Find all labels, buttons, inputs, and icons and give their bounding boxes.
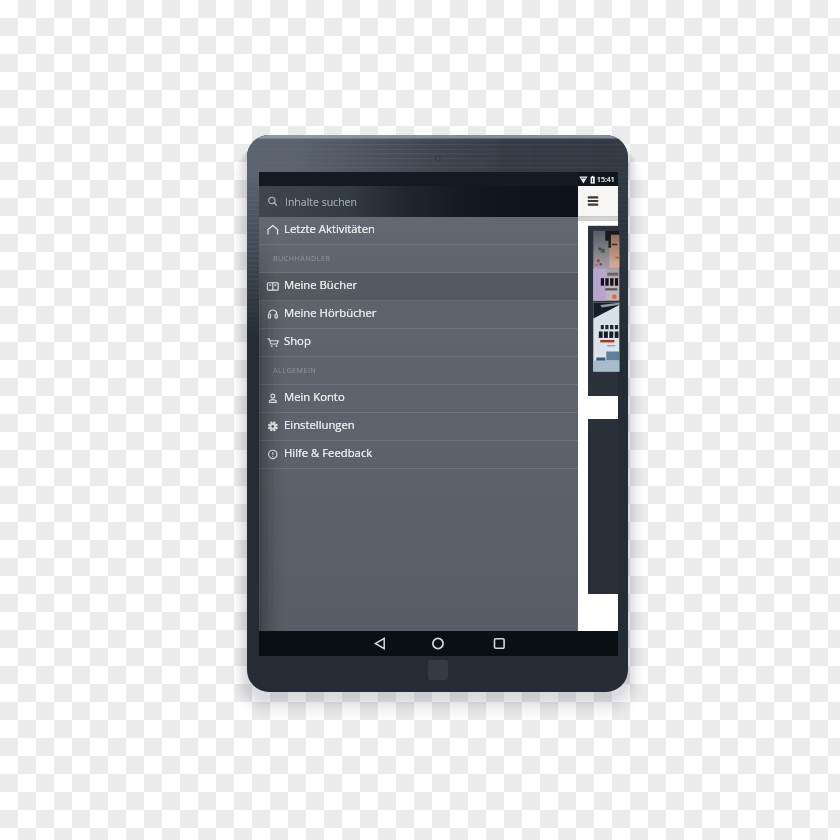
- button[interactable]: Einstellungen: [259, 413, 578, 441]
- staticText: Meine Bücher: [284, 277, 358, 292]
- staticText: Mein Konto: [284, 389, 345, 404]
- staticText: Meine Hörbücher: [284, 305, 377, 320]
- button[interactable]: Meine Hörbücher: [259, 301, 578, 329]
- staticText: Hilfe & Feedback: [284, 445, 373, 460]
- staticText: ALLGEMEIN: [273, 365, 317, 375]
- staticText: Shop: [284, 333, 311, 348]
- staticText: Letzte Aktivitäten: [284, 221, 375, 236]
- button[interactable]: Hilfe & Feedback: [259, 441, 578, 469]
- staticText: 15:41: [597, 175, 615, 184]
- button[interactable]: Mein Konto: [259, 385, 578, 413]
- staticText: BUCHHÄNDLER: [273, 253, 331, 263]
- staticText: Inhalte suchen: [285, 195, 357, 209]
- button[interactable]: Open navigation drawer: [578, 186, 618, 217]
- staticText: Einstellungen: [284, 417, 355, 432]
- button[interactable]: Letzte Aktivitäten: [259, 217, 578, 245]
- button[interactable]: Shop: [259, 329, 578, 357]
- button[interactable]: Inhalte suchen: [259, 186, 578, 217]
- button[interactable]: Meine Bücher: [259, 273, 578, 301]
